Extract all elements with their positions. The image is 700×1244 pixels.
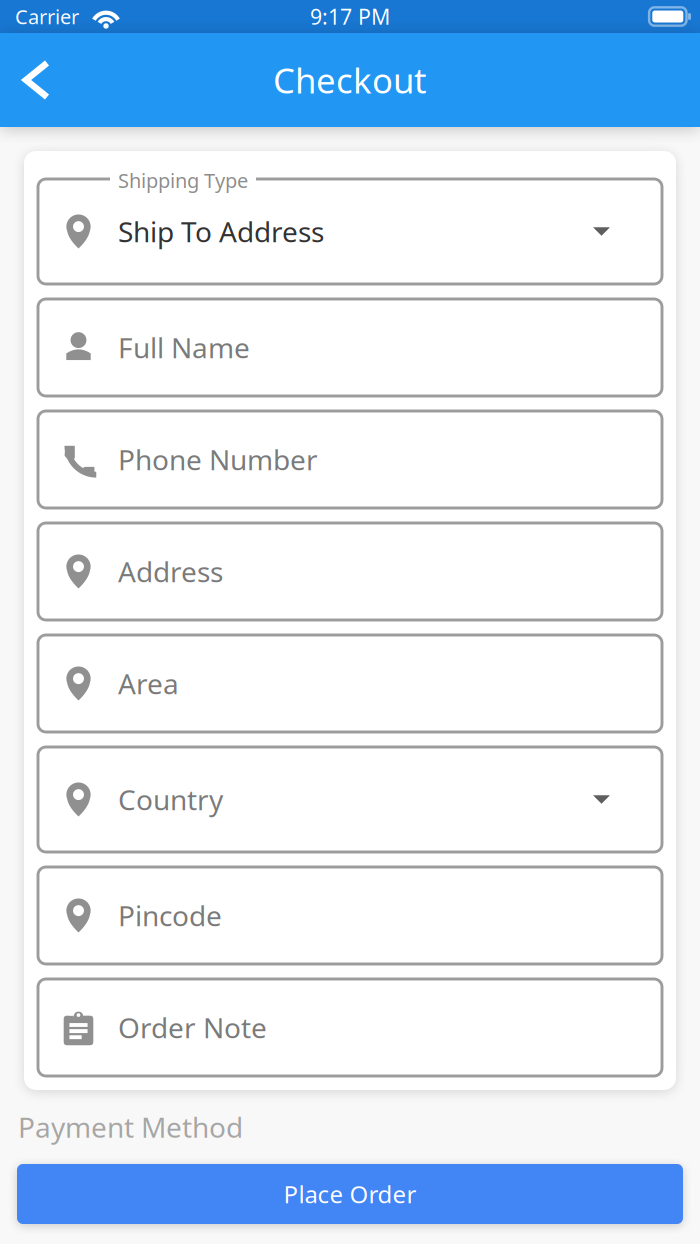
button[interactable]: Address	[38, 523, 662, 620]
staticText: Full Name	[118, 329, 250, 366]
button[interactable]: Ship To Address	[38, 179, 662, 284]
button[interactable]: Country	[38, 747, 662, 852]
staticText: Country	[118, 781, 223, 818]
button[interactable]: Full Name	[38, 299, 662, 396]
staticText: Phone Number	[118, 441, 318, 478]
staticText: Payment Method	[18, 1108, 243, 1146]
staticText: Checkout	[273, 57, 427, 103]
button[interactable]: Place Order	[17, 1164, 683, 1224]
staticText: Shipping Type	[118, 167, 248, 194]
button[interactable]: Area	[38, 635, 662, 732]
staticText: 9:17 PM	[310, 2, 390, 31]
staticText: Ship To Address	[118, 213, 324, 250]
staticText: Place Order	[283, 1178, 416, 1210]
button[interactable]: Back	[0, 33, 73, 127]
staticText: Pincode	[118, 897, 222, 934]
staticText: Carrier	[15, 3, 79, 30]
button[interactable]: Phone Number	[38, 411, 662, 508]
staticText: Area	[118, 665, 179, 702]
button[interactable]: Pincode	[38, 867, 662, 964]
staticText: Address	[118, 553, 223, 590]
staticText: Order Note	[118, 1009, 267, 1046]
button[interactable]: Order Note	[38, 979, 662, 1076]
